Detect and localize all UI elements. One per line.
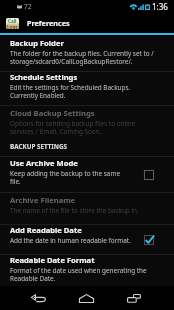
button[interactable]: Archive Filename — [0, 193, 174, 224]
staticText: The folder for the backup files. Current… — [10, 49, 154, 66]
staticText: Backup Folder — [10, 38, 64, 48]
staticText: Readable Date Format — [10, 255, 95, 265]
button[interactable]: Back — [21, 286, 55, 310]
staticText: Add Readable Date — [10, 225, 82, 235]
button[interactable]: App icon, navigate up — [6, 18, 19, 29]
button[interactable]: Backup Folder — [0, 35, 174, 71]
button[interactable]: Cloud Backup Settings — [0, 106, 174, 141]
staticText: BACKUP SETTINGS — [10, 142, 67, 151]
staticText: Logs — [7, 24, 18, 29]
staticText: Format of the date used when generating … — [10, 266, 147, 283]
staticText: Keep adding the backup to the same file. — [10, 169, 121, 186]
button[interactable]: Readable Date Format — [0, 255, 174, 286]
staticText: Options for sending backup files to onli… — [10, 119, 136, 136]
button[interactable]: Recent apps — [117, 286, 151, 310]
button[interactable]: Use Archive Mode — [0, 157, 174, 192]
staticText: Add the date in human readable format. — [10, 236, 131, 245]
staticText: Schedule Settings — [10, 72, 78, 82]
button[interactable]: Add Readable Date — [0, 225, 174, 254]
staticText: Preferences — [27, 18, 70, 28]
staticText: 1:36 — [152, 1, 168, 12]
staticText: Cloud Backup Settings — [10, 108, 95, 118]
staticText: Archive Filename — [10, 195, 76, 205]
staticText: The name of the file to store the backup… — [10, 206, 139, 215]
staticText: 72 — [24, 2, 32, 11]
button[interactable]: Home — [69, 286, 103, 310]
staticText: Use Archive Mode — [10, 158, 78, 168]
button[interactable]: Schedule Settings — [0, 72, 174, 105]
staticText: Edit the settings for Scheduled Backups.… — [10, 83, 131, 100]
staticText: Call — [8, 18, 17, 24]
